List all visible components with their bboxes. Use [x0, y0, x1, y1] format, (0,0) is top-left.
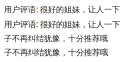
staticText: 用户评语: 很好的姐妹，让人一下: [4, 4, 120, 15]
staticText: 子不再纠结犹豫，十分推荐哦: [4, 47, 108, 58]
staticText: 用户评语: 很好的姐妹，让人一下: [4, 19, 120, 30]
staticText: 子不再纠结犹豫，十分推荐哦: [4, 34, 108, 43]
